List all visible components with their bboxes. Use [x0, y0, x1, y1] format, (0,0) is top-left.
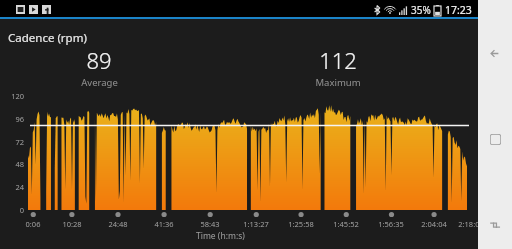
button[interactable]: Back [478, 36, 512, 70]
staticText: 89 [86, 45, 112, 75]
button[interactable]: Recents [478, 208, 512, 242]
staticText: 112 [319, 45, 357, 75]
staticText: Average [81, 76, 118, 89]
staticText: 120 [2, 91, 24, 101]
staticText: 48 [2, 159, 24, 169]
staticText: 96 [2, 114, 24, 124]
staticText: 35% [411, 3, 431, 17]
staticText: 58:43 [190, 219, 230, 229]
staticText: 2:18:03 [451, 219, 491, 229]
staticText: 1:13:27 [236, 219, 276, 229]
staticText: Maximum [315, 76, 361, 89]
staticText: 1:56:35 [371, 219, 411, 229]
button[interactable]: Home [478, 122, 512, 156]
staticText: 1:45:52 [326, 219, 366, 229]
staticText: 17:23 [445, 3, 472, 17]
staticText: 24 [2, 182, 24, 192]
staticText: 72 [2, 137, 24, 147]
staticText: 0:06 [13, 219, 53, 229]
staticText: 24:48 [98, 219, 138, 229]
staticText: 1:25:58 [281, 219, 321, 229]
staticText: 2:04:04 [414, 219, 454, 229]
staticText: 10:28 [52, 219, 92, 229]
staticText: Cadence (rpm) [8, 30, 87, 46]
staticText: Time (h:m:s) [196, 230, 245, 242]
staticText: 41:36 [144, 219, 184, 229]
staticText: 0 [2, 205, 24, 215]
